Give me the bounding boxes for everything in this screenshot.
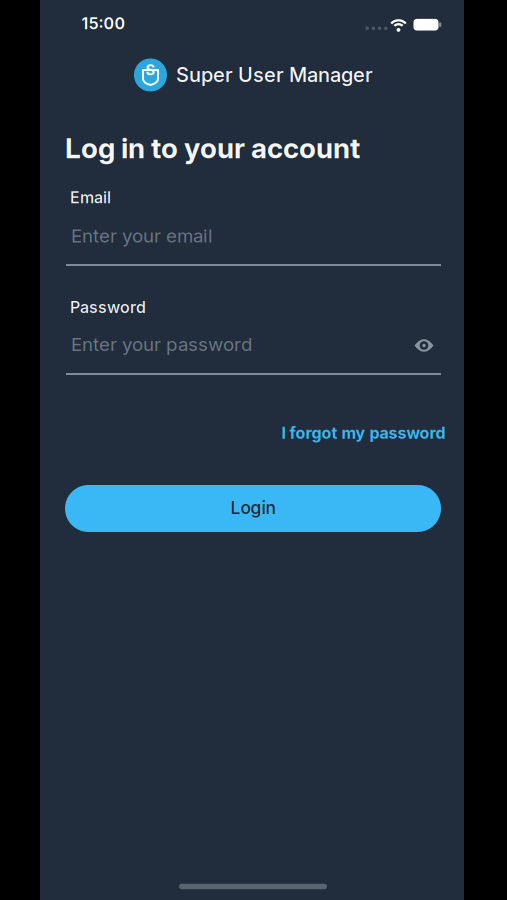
staticText: Log in to your account: [65, 131, 360, 164]
staticText: Password: [70, 298, 146, 317]
staticText: I forgot my password: [281, 424, 445, 442]
staticText: Enter your password: [71, 333, 252, 355]
staticText: Super User Manager: [176, 63, 373, 87]
button[interactable]: Show password: [414, 338, 434, 352]
staticText: Login: [230, 498, 275, 518]
staticText: S: [145, 61, 155, 79]
button[interactable]: I forgot my password: [281, 424, 445, 442]
staticText: 15:00: [81, 14, 125, 33]
button[interactable]: Login: [65, 485, 441, 532]
staticText: Email: [70, 188, 111, 207]
staticText: Enter your email: [71, 225, 213, 247]
